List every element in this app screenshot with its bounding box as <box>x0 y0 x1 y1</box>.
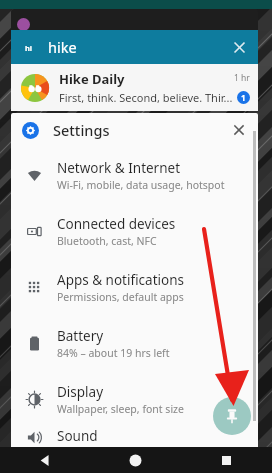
staticText: Permissions, default apps <box>57 290 184 304</box>
button[interactable]: Recent apps <box>181 447 272 473</box>
staticText: hi <box>25 43 33 53</box>
button[interactable]: Back <box>0 447 90 473</box>
staticText: First, think. Second, believe. Thir... <box>59 90 233 105</box>
staticText: 1 hr <box>234 72 250 84</box>
button[interactable]: hi <box>11 30 258 64</box>
button[interactable]: Display <box>11 371 258 427</box>
staticText: Settings <box>53 120 110 140</box>
button[interactable]: Hike Daily <box>11 64 258 111</box>
button[interactable]: Dismiss settings notification <box>224 115 254 145</box>
button[interactable]: Settings <box>11 113 258 147</box>
staticText: Bluetooth, cast, NFC <box>57 234 157 248</box>
staticText: Wallpaper, sleep, font size <box>57 402 184 416</box>
button[interactable]: Home <box>90 447 181 473</box>
staticText: Network & Internet <box>57 159 181 177</box>
button[interactable]: Dismiss hike notifications <box>224 32 254 62</box>
staticText: Sound <box>57 427 98 445</box>
button[interactable]: Network & Internet <box>11 147 258 203</box>
staticText: Hike Daily <box>59 70 125 88</box>
button[interactable]: Pin notification <box>213 397 251 435</box>
button[interactable]: Sound <box>11 427 258 447</box>
button[interactable]: Apps & notifications <box>11 259 258 315</box>
button[interactable]: Battery <box>11 315 258 371</box>
staticText: Display <box>57 383 104 401</box>
staticText: Battery <box>57 327 104 345</box>
staticText: 84% – about 19 hrs left <box>57 346 170 360</box>
button[interactable]: Connected devices <box>11 203 258 259</box>
staticText: Wi-Fi, mobile, data usage, hotspot <box>57 178 225 192</box>
staticText: 1 <box>241 92 246 103</box>
staticText: Apps & notifications <box>57 271 184 289</box>
staticText: Connected devices <box>57 215 176 233</box>
staticText: hike <box>48 37 77 57</box>
